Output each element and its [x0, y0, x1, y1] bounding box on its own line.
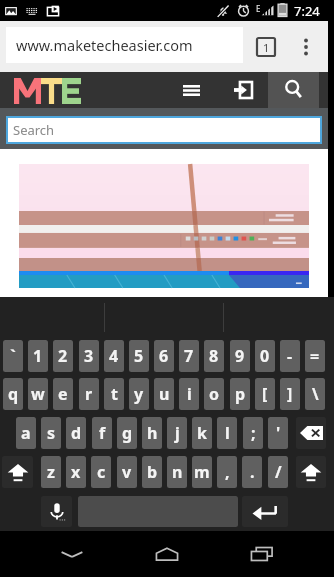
staticText: j	[175, 422, 180, 444]
button[interactable]: Make Tech Easier home	[14, 78, 81, 104]
button[interactable]: l	[217, 417, 237, 449]
button[interactable]: y	[129, 378, 149, 410]
staticText: .	[250, 461, 255, 483]
button[interactable]: Backspace	[296, 417, 326, 449]
button[interactable]: 4	[104, 340, 124, 372]
button[interactable]: www.maketecheasier.com	[6, 27, 243, 63]
button[interactable]: n	[167, 456, 187, 488]
button[interactable]: z	[41, 456, 61, 488]
staticText: l	[225, 422, 230, 444]
staticText: u	[159, 383, 170, 405]
button[interactable]: k	[192, 417, 212, 449]
button[interactable]: d	[66, 417, 86, 449]
button[interactable]: Sign in	[225, 72, 261, 108]
staticText: 5	[134, 345, 144, 367]
button[interactable]: 8	[204, 340, 224, 372]
button[interactable]: x	[66, 456, 86, 488]
button[interactable]: 0	[255, 340, 275, 372]
staticText: c	[97, 461, 106, 483]
button[interactable]: b	[142, 456, 162, 488]
button[interactable]: u	[154, 378, 174, 410]
staticText: i	[187, 383, 192, 405]
staticText: 0	[260, 345, 270, 367]
button[interactable]: 2	[53, 340, 73, 372]
button[interactable]: t	[104, 378, 124, 410]
staticText: 3	[84, 345, 94, 367]
button[interactable]: p	[230, 378, 250, 410]
staticText: 4	[109, 345, 119, 367]
button[interactable]: f	[92, 417, 112, 449]
staticText: 1	[33, 345, 43, 367]
button[interactable]: Enter	[242, 496, 288, 527]
staticText: q	[8, 383, 19, 405]
button[interactable]: r	[79, 378, 99, 410]
staticText: '	[276, 422, 281, 444]
staticText: z	[47, 461, 55, 483]
button[interactable]: Home	[144, 531, 190, 577]
button[interactable]: Shift	[296, 456, 326, 488]
staticText: o	[209, 383, 220, 405]
staticText: 1	[263, 40, 270, 55]
staticText: /	[275, 461, 282, 483]
button[interactable]: j	[167, 417, 187, 449]
button[interactable]: v	[117, 456, 137, 488]
staticText: b	[147, 461, 158, 483]
button[interactable]: ]	[280, 378, 300, 410]
button[interactable]: 5	[129, 340, 149, 372]
button[interactable]: Back	[49, 531, 95, 577]
button[interactable]: '	[268, 417, 288, 449]
staticText: \	[312, 383, 319, 405]
staticText: 6	[159, 345, 169, 367]
button[interactable]: -	[280, 340, 300, 372]
staticText: p	[235, 383, 246, 405]
button[interactable]: 7	[179, 340, 199, 372]
staticText: d	[71, 422, 82, 444]
button[interactable]: /	[268, 456, 288, 488]
button[interactable]: m	[192, 456, 212, 488]
button[interactable]: o	[204, 378, 224, 410]
button[interactable]: 6	[154, 340, 174, 372]
button[interactable]: a	[16, 417, 36, 449]
button[interactable]: q	[3, 378, 23, 410]
button[interactable]: Recent apps	[239, 531, 285, 577]
button[interactable]: w	[28, 378, 48, 410]
button[interactable]: Voice input	[41, 496, 72, 527]
button[interactable]: s	[41, 417, 61, 449]
staticText: 9	[235, 345, 245, 367]
staticText: www.maketecheasier.com	[16, 35, 193, 55]
button[interactable]: ,	[217, 456, 237, 488]
button[interactable]: c	[91, 456, 111, 488]
button[interactable]: Search	[268, 72, 319, 108]
staticText: ,	[225, 461, 230, 483]
button[interactable]: h	[142, 417, 162, 449]
staticText: e	[58, 383, 68, 405]
staticText: n	[172, 461, 183, 483]
button[interactable]: \	[305, 378, 325, 410]
button[interactable]: More options	[291, 21, 321, 72]
button[interactable]: [	[255, 378, 275, 410]
button[interactable]: i	[179, 378, 199, 410]
button[interactable]: `	[3, 340, 23, 372]
button[interactable]: ;	[243, 417, 263, 449]
button[interactable]: .	[242, 456, 262, 488]
button[interactable]: 1	[28, 340, 48, 372]
staticText: ]	[287, 383, 293, 405]
button[interactable]: Search	[8, 118, 320, 142]
button[interactable]: e	[53, 378, 73, 410]
button[interactable]: Menu	[173, 72, 209, 108]
staticText: r	[85, 383, 93, 405]
staticText: g	[122, 422, 133, 444]
button[interactable]: g	[117, 417, 137, 449]
button[interactable]: Tabs	[251, 21, 281, 72]
staticText: m	[194, 461, 210, 483]
staticText: 8	[209, 345, 219, 367]
button[interactable]: Shift	[2, 456, 33, 488]
button[interactable]: 9	[230, 340, 250, 372]
staticText: k	[197, 422, 207, 444]
button[interactable]: 3	[79, 340, 99, 372]
button[interactable]: =	[305, 340, 325, 372]
